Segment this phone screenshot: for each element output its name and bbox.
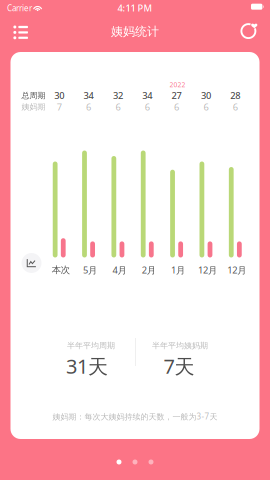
staticText: 27 [172, 89, 182, 101]
staticText: 5月 [83, 264, 97, 276]
staticText: 姨妈期：每次大姨妈持续的天数，一般为3-7天 [52, 411, 217, 422]
staticText: 半年平均周期 [67, 341, 115, 350]
staticText: 本次 [52, 264, 70, 276]
staticText: 32 [113, 89, 123, 101]
staticText: 4月 [112, 264, 126, 276]
staticText: 6 [174, 101, 179, 113]
staticText: 30 [201, 89, 211, 101]
staticText: 6 [203, 101, 208, 113]
staticText: Carrier [7, 3, 32, 13]
staticText: 4:11 PM [117, 2, 152, 14]
staticText: 7天 [163, 353, 194, 379]
staticText: 半年平均姨妈期 [152, 341, 208, 350]
staticText: 7 [57, 101, 62, 113]
staticText: 2022 [170, 80, 186, 89]
staticText: 6 [86, 101, 91, 113]
staticText: 34 [84, 89, 94, 101]
staticText: 34 [142, 89, 152, 101]
staticText: 总周期 [21, 91, 45, 100]
staticText: 12月 [227, 264, 246, 276]
staticText: 6 [115, 101, 120, 113]
staticText: 6 [145, 101, 150, 113]
button[interactable]: Cycle history [0, 0, 30, 27]
staticText: 12月 [198, 264, 217, 276]
staticText: 姨妈期 [21, 102, 45, 112]
staticText: 30 [54, 89, 64, 101]
button[interactable]: Menu [0, 0, 30, 26]
staticText: 28 [230, 89, 240, 101]
staticText: 1月 [171, 264, 185, 276]
staticText: 2月 [142, 264, 156, 276]
staticText: 31天 [66, 353, 108, 379]
staticText: 6 [233, 101, 238, 113]
staticText: 姨妈统计 [111, 24, 159, 39]
